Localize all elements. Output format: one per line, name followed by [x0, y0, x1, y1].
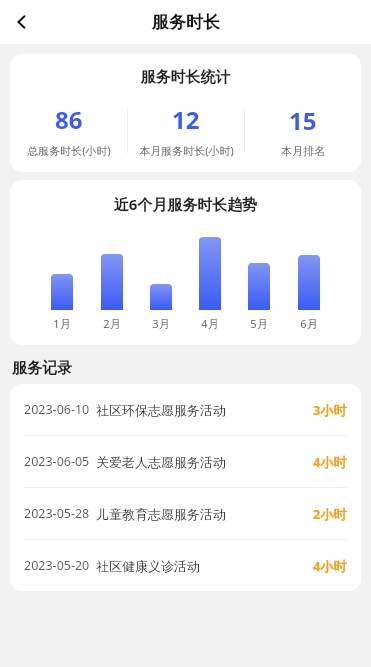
staticText: 服务时长统计 [10, 68, 361, 87]
staticText: 2小时 [313, 505, 347, 523]
staticText: 1月 [53, 316, 71, 331]
button[interactable]: 2023-05-20 [10, 540, 361, 591]
staticText: 2023-05-20 [24, 557, 90, 574]
staticText: 12 [172, 103, 200, 136]
button[interactable]: 2023-06-05 [10, 436, 361, 487]
staticText: 本月服务时长(小时) [139, 143, 234, 158]
button[interactable]: 15 [245, 104, 361, 158]
staticText: 2023-06-05 [24, 453, 90, 470]
staticText: 15 [289, 104, 317, 137]
staticText: 社区健康义诊活动 [96, 558, 313, 574]
button[interactable]: 2023-05-28 [10, 488, 361, 539]
staticText: 4小时 [313, 557, 347, 575]
staticText: 社区环保志愿服务活动 [96, 402, 313, 418]
staticText: 服务记录 [12, 359, 72, 378]
staticText: 本月排名 [281, 144, 325, 158]
staticText: 2023-06-10 [24, 401, 90, 418]
staticText: 3小时 [313, 401, 347, 419]
staticText: 5月 [250, 316, 268, 331]
staticText: 6月 [300, 316, 318, 331]
staticText: 4月 [201, 316, 219, 331]
staticText: 服务时长 [152, 12, 220, 33]
staticText: 4小时 [313, 453, 347, 471]
button[interactable]: 2023-06-10 [10, 384, 361, 435]
button[interactable]: Back [0, 0, 44, 44]
button[interactable]: 86 [10, 103, 127, 158]
staticText: 关爱老人志愿服务活动 [96, 454, 313, 470]
staticText: 2023-05-28 [24, 505, 90, 522]
staticText: 近6个月服务时长趋势 [10, 194, 361, 214]
staticText: 86 [55, 103, 83, 136]
staticText: 总服务时长(小时) [27, 143, 111, 158]
staticText: 2月 [103, 316, 121, 331]
staticText: 3月 [152, 316, 170, 331]
staticText: 儿童教育志愿服务活动 [96, 506, 313, 522]
button[interactable]: 12 [128, 103, 244, 158]
